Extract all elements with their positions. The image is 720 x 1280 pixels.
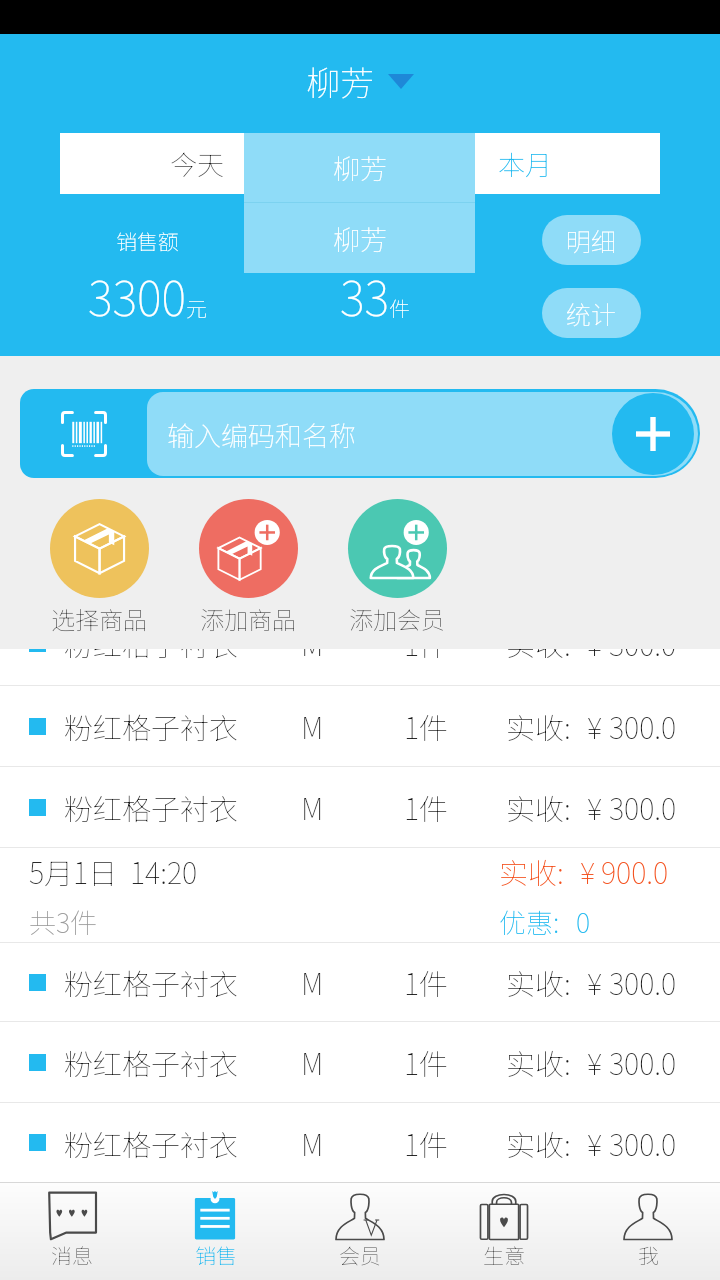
staticText: 33 bbox=[340, 261, 389, 329]
button[interactable]: 销售 bbox=[144, 1183, 288, 1280]
staticText: 粉红格子衬衣 bbox=[64, 1041, 239, 1083]
staticText: 1件 bbox=[404, 705, 449, 747]
staticText: 300.0 bbox=[609, 1041, 677, 1083]
staticText: 实收: bbox=[506, 1041, 571, 1083]
staticText: 300.0 bbox=[609, 786, 677, 828]
button[interactable]: 明细 bbox=[542, 215, 641, 265]
staticText: 1件 bbox=[404, 649, 449, 664]
staticText: 生意 bbox=[483, 1240, 525, 1270]
button[interactable]: 粉红格子衬衣 bbox=[0, 1103, 720, 1182]
button[interactable]: 粉红格子衬衣 bbox=[0, 767, 720, 847]
staticText: 0 bbox=[576, 902, 591, 941]
staticText: 消息 bbox=[51, 1240, 93, 1270]
button[interactable]: 消息 bbox=[0, 1183, 144, 1280]
staticText: 选择商品 bbox=[51, 601, 147, 636]
staticText: ¥ bbox=[587, 649, 603, 664]
staticText: ¥ bbox=[587, 1122, 603, 1164]
button[interactable]: 我 bbox=[576, 1183, 720, 1280]
staticText: 粉红格子衬衣 bbox=[64, 1122, 239, 1164]
staticText: ¥ bbox=[587, 961, 603, 1003]
staticText: 实收: bbox=[506, 786, 571, 828]
staticText: M bbox=[301, 649, 324, 664]
staticText: 实收: bbox=[506, 649, 571, 664]
button[interactable]: 柳芳 bbox=[294, 51, 426, 112]
button[interactable]: Add bbox=[612, 393, 694, 475]
staticText: M bbox=[301, 705, 324, 747]
button[interactable]: 添加商品 bbox=[178, 499, 318, 636]
staticText: 粉红格子衬衣 bbox=[64, 961, 239, 1003]
button[interactable]: 粉红格子衬衣 bbox=[0, 686, 720, 766]
button[interactable]: 粉红格子衬衣 bbox=[0, 943, 720, 1021]
staticText: 销售 bbox=[195, 1240, 237, 1270]
staticText: 本周 bbox=[334, 144, 388, 183]
button[interactable]: 本周 bbox=[279, 133, 443, 194]
staticText: 粉红格子衬衣 bbox=[64, 786, 239, 828]
staticText: 1件 bbox=[404, 1122, 449, 1164]
staticText: 统计 bbox=[566, 295, 617, 331]
staticText: ¥ bbox=[587, 1041, 603, 1083]
staticText: 实收: bbox=[506, 705, 571, 747]
staticText: 今天 bbox=[170, 144, 224, 183]
staticText: 5月1日 14:20 bbox=[29, 850, 198, 892]
staticText: 共3件 bbox=[29, 902, 98, 941]
button[interactable]: 粉红格子衬衣 bbox=[0, 649, 720, 683]
staticText: 柳芳 bbox=[333, 148, 387, 187]
staticText: 我 bbox=[638, 1240, 659, 1270]
staticText: M bbox=[301, 1122, 324, 1164]
staticText: 实收: bbox=[499, 850, 564, 892]
staticText: M bbox=[301, 961, 324, 1003]
staticText: 销售额 bbox=[116, 226, 179, 256]
button[interactable]: 添加会员 bbox=[327, 499, 467, 636]
staticText: ¥ bbox=[587, 705, 603, 747]
staticText: 输入编码和名称 bbox=[167, 415, 356, 454]
button[interactable]: 会员 bbox=[288, 1183, 432, 1280]
staticText: 实收: bbox=[506, 961, 571, 1003]
staticText: 300.0 bbox=[609, 961, 677, 1003]
button[interactable]: 本月 bbox=[443, 133, 607, 194]
staticText: 粉红格子衬衣 bbox=[64, 705, 239, 747]
staticText: 添加会员 bbox=[349, 601, 445, 636]
staticText: 900.0 bbox=[601, 850, 669, 892]
staticText: 优惠: bbox=[499, 902, 560, 941]
button[interactable]: Scan barcode bbox=[20, 389, 147, 478]
staticText: ¥ bbox=[580, 850, 596, 892]
button[interactable]: 选择商品 bbox=[29, 499, 169, 636]
button[interactable]: 统计 bbox=[542, 288, 641, 338]
staticText: 3300 bbox=[88, 261, 186, 329]
staticText: ¥ bbox=[587, 786, 603, 828]
staticText: 实收: bbox=[506, 1122, 571, 1164]
staticText: 添加商品 bbox=[200, 601, 296, 636]
staticText: 1件 bbox=[404, 961, 449, 1003]
button[interactable]: 输入编码和名称 bbox=[147, 392, 698, 476]
staticText: 300.0 bbox=[609, 705, 677, 747]
staticText: M bbox=[301, 786, 324, 828]
staticText: 柳芳 bbox=[333, 219, 387, 258]
staticText: 柳芳 bbox=[306, 57, 374, 106]
button[interactable]: 柳芳 bbox=[244, 203, 475, 273]
staticText: M bbox=[301, 1041, 324, 1083]
button[interactable]: 5月1日 14:20 bbox=[0, 848, 720, 942]
button[interactable]: 生意 bbox=[432, 1183, 576, 1280]
button[interactable]: 今天 bbox=[115, 133, 279, 194]
staticText: 元 bbox=[186, 293, 207, 323]
staticText: 1件 bbox=[404, 1041, 449, 1083]
staticText: 件 bbox=[389, 293, 410, 323]
staticText: 会员 bbox=[339, 1240, 381, 1270]
staticText: 1件 bbox=[404, 786, 449, 828]
staticText: 粉红格子衬衣 bbox=[64, 649, 239, 664]
staticText: 300.0 bbox=[609, 1122, 677, 1164]
button[interactable]: 粉红格子衬衣 bbox=[0, 1022, 720, 1102]
button[interactable]: 柳芳 bbox=[244, 133, 475, 202]
staticText: 300.0 bbox=[609, 649, 677, 664]
staticText: 明细 bbox=[566, 222, 617, 258]
staticText: 本月 bbox=[498, 144, 552, 183]
